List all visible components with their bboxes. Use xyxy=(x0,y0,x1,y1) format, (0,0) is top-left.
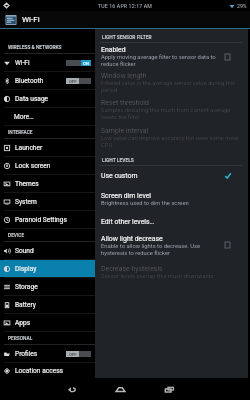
button[interactable]: Paranoid Settings xyxy=(0,211,95,228)
staticText: Enable to allow lights to decrease. Use … xyxy=(101,243,220,256)
staticText: More… xyxy=(14,113,34,121)
button[interactable]: Enabled xyxy=(95,43,248,70)
button[interactable]: More… xyxy=(0,108,95,125)
staticText: Sensor levels overlap this much downward… xyxy=(101,273,214,280)
button[interactable]: Use custom xyxy=(95,166,248,185)
staticText: Wi-Fi xyxy=(22,15,40,24)
button[interactable]: Allow light decrease xyxy=(95,231,248,259)
button[interactable]: Window length xyxy=(95,70,248,95)
staticText: WIRELESS & NETWORKS xyxy=(8,45,62,51)
button[interactable]: Wi-Fi xyxy=(0,11,250,28)
button[interactable]: Wi-Fi xyxy=(0,54,95,71)
staticText: Wi-Fi xyxy=(15,59,30,67)
button[interactable]: Data usage xyxy=(0,90,95,107)
staticText: 29% xyxy=(237,3,247,9)
staticText: Enabled xyxy=(101,46,126,54)
staticText: Filtered value is the average sensor val… xyxy=(101,80,240,93)
staticText: DEVICE xyxy=(8,233,25,239)
staticText: Data usage xyxy=(15,95,49,103)
staticText: System xyxy=(15,198,37,206)
staticText: INTERFACE xyxy=(8,130,33,136)
staticText: Reset threshold xyxy=(101,99,149,107)
staticText: Display xyxy=(15,265,37,273)
staticText: Paranoid Settings xyxy=(15,216,67,224)
staticText: Storage xyxy=(15,283,38,291)
button[interactable]: ON xyxy=(66,60,91,66)
staticText: Bluetooth xyxy=(15,77,44,85)
staticText: Window length xyxy=(101,72,147,80)
button[interactable]: Sample interval xyxy=(95,123,248,152)
button[interactable]: Screen dim level xyxy=(95,185,248,213)
staticText: Use custom xyxy=(101,172,138,180)
button[interactable]: OFF xyxy=(66,78,91,84)
button[interactable]: Decrease hysteresis xyxy=(95,259,248,285)
button[interactable]: Launcher xyxy=(0,139,95,156)
button[interactable]: Battery xyxy=(0,296,95,313)
button[interactable]: Storage xyxy=(0,278,95,295)
staticText: Launcher xyxy=(15,144,43,152)
button[interactable]: Lock screen xyxy=(0,157,95,174)
button[interactable]: Display xyxy=(0,260,95,277)
staticText: Sample interval xyxy=(101,127,149,135)
staticText: Edit other levels… xyxy=(101,218,155,226)
staticText: Brightness used to dim the screen xyxy=(101,200,189,207)
button[interactable]: Reset threshold xyxy=(95,95,248,123)
button[interactable]: Recent apps xyxy=(158,379,180,400)
button[interactable]: Back xyxy=(60,379,82,400)
staticText: TUE 16 APR 12:17 AM xyxy=(98,3,152,9)
staticText: OFF xyxy=(69,79,77,84)
staticText: ON xyxy=(83,61,89,66)
button[interactable]: Home xyxy=(109,379,131,400)
button[interactable]: Location access xyxy=(0,363,95,379)
staticText: LIGHT SENSOR FILTER xyxy=(102,34,152,40)
staticText: Samples deviating this much from current… xyxy=(101,107,240,120)
button[interactable]: Apps xyxy=(0,314,95,331)
staticText: Profiles xyxy=(15,350,38,358)
staticText: LIGHT LEVELS xyxy=(102,157,134,163)
staticText: Low value can improve accuracy but uses … xyxy=(101,135,240,148)
staticText: Lock screen xyxy=(15,162,51,170)
staticText: Decrease hysteresis xyxy=(101,265,163,273)
button[interactable]: OFF xyxy=(66,351,91,357)
staticText: Sound xyxy=(15,247,34,255)
button[interactable]: System xyxy=(0,193,95,210)
staticText: PERSONAL xyxy=(8,336,33,342)
staticText: Themes xyxy=(15,180,39,188)
staticText: Apply moving average filter to sensor da… xyxy=(101,54,220,67)
button[interactable]: Bluetooth xyxy=(0,72,95,89)
staticText: Location access xyxy=(15,367,63,375)
button[interactable]: Profiles xyxy=(0,345,95,362)
staticText: Apps xyxy=(15,319,31,327)
button[interactable]: Themes xyxy=(0,175,95,192)
staticText: Battery xyxy=(15,301,36,309)
button[interactable]: Sound xyxy=(0,242,95,259)
staticText: Allow light decrease xyxy=(101,235,163,243)
button[interactable]: Edit other levels… xyxy=(95,213,248,231)
staticText: OFF xyxy=(69,352,77,357)
staticText: Screen dim level xyxy=(101,192,152,200)
